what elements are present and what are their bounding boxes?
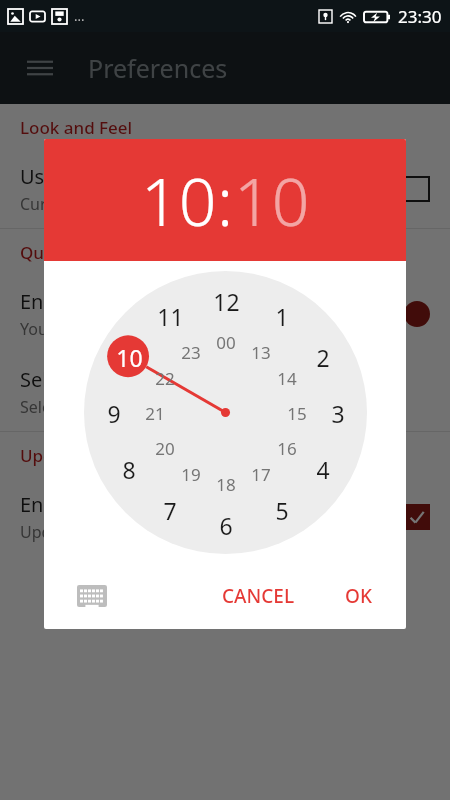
button[interactable]: 4 bbox=[302, 448, 344, 490]
staticText: 6 bbox=[219, 510, 233, 541]
button[interactable]: Enable Quests bbox=[0, 275, 450, 353]
button[interactable]: 12 bbox=[205, 280, 247, 322]
staticText: 14 bbox=[277, 367, 297, 390]
button[interactable]: Open navigation menu bbox=[16, 44, 64, 92]
button[interactable]: 8 bbox=[108, 448, 150, 490]
button[interactable]: Use Dark Theme bbox=[0, 150, 450, 228]
staticText: 22 bbox=[155, 367, 175, 390]
button[interactable]: 3 bbox=[317, 392, 359, 434]
button[interactable]: 13 bbox=[243, 334, 279, 370]
staticText: Enable Updates bbox=[20, 491, 168, 518]
button[interactable]: Switch to text input bbox=[72, 576, 112, 616]
button[interactable]: 16 bbox=[269, 430, 305, 466]
staticText: 2 bbox=[316, 342, 330, 373]
staticText: Quest Settings bbox=[20, 241, 140, 264]
button[interactable]: 11 bbox=[149, 295, 191, 337]
staticText: 1 bbox=[275, 301, 289, 332]
button[interactable]: 22 bbox=[147, 360, 183, 396]
button[interactable]: 2 bbox=[302, 336, 344, 378]
button[interactable]: 10 bbox=[108, 336, 150, 378]
button[interactable]: 00 bbox=[208, 324, 244, 360]
staticText: 19 bbox=[181, 463, 201, 486]
button[interactable]: Checked bbox=[404, 504, 430, 530]
staticText: 23:30 bbox=[398, 5, 442, 28]
staticText: Look and Feel bbox=[20, 116, 133, 139]
button[interactable]: 18 bbox=[208, 466, 244, 502]
button[interactable]: 23 bbox=[173, 334, 209, 370]
button[interactable]: 9 bbox=[93, 392, 135, 434]
staticText: Preferences bbox=[88, 51, 228, 85]
staticText: 00 bbox=[216, 331, 236, 354]
button[interactable]: 21 bbox=[137, 395, 173, 431]
staticText: Select Quest Pack bbox=[20, 366, 186, 393]
staticText: 8 bbox=[122, 454, 136, 485]
button[interactable]: Select Quest Pack bbox=[0, 353, 450, 431]
staticText: 5 bbox=[275, 495, 289, 526]
staticText: Updates are enabled on startup bbox=[20, 521, 259, 543]
staticText: 9 bbox=[107, 398, 121, 429]
staticText: 4 bbox=[316, 454, 330, 485]
staticText: 7 bbox=[163, 495, 177, 526]
button[interactable]: 5 bbox=[261, 489, 303, 531]
staticText: Updates bbox=[20, 444, 88, 467]
staticText: ... bbox=[74, 7, 85, 25]
staticText: : bbox=[217, 155, 234, 245]
staticText: Currently using light theme bbox=[20, 193, 227, 215]
staticText: OK bbox=[345, 583, 372, 609]
staticText: 17 bbox=[251, 463, 271, 486]
button[interactable]: Enable Updates bbox=[0, 478, 450, 556]
staticText: 21 bbox=[145, 402, 165, 425]
staticText: 12 bbox=[213, 286, 240, 317]
staticText: 18 bbox=[216, 473, 236, 496]
staticText: 3 bbox=[331, 398, 345, 429]
button[interactable]: Toggle bbox=[384, 301, 430, 327]
staticText: Enable Quests bbox=[20, 288, 155, 315]
staticText: 15 bbox=[287, 402, 307, 425]
button[interactable]: 10 bbox=[234, 155, 310, 245]
staticText: 13 bbox=[251, 341, 271, 364]
staticText: 11 bbox=[157, 301, 184, 332]
button[interactable]: 7 bbox=[149, 489, 191, 531]
button[interactable]: 19 bbox=[173, 456, 209, 492]
button[interactable]: CANCEL bbox=[208, 575, 309, 617]
staticText: 10 bbox=[116, 342, 143, 373]
button[interactable]: 20 bbox=[147, 430, 183, 466]
button[interactable]: 14 bbox=[269, 360, 305, 396]
staticText: Select the pack to use bbox=[20, 396, 183, 418]
staticText: CANCEL bbox=[222, 583, 295, 609]
button[interactable]: 6 bbox=[205, 504, 247, 546]
button[interactable]: 10 bbox=[141, 155, 217, 245]
button[interactable]: OK bbox=[331, 575, 386, 617]
button[interactable]: 15 bbox=[279, 395, 315, 431]
button[interactable]: 17 bbox=[243, 456, 279, 492]
button[interactable]: Unchecked bbox=[404, 176, 430, 202]
staticText: Use Dark Theme bbox=[20, 163, 176, 190]
staticText: 20 bbox=[155, 437, 175, 460]
staticText: 23 bbox=[181, 341, 201, 364]
staticText: 16 bbox=[277, 437, 297, 460]
button[interactable]: 1 bbox=[261, 295, 303, 337]
staticText: You can disable quests here bbox=[20, 318, 229, 340]
